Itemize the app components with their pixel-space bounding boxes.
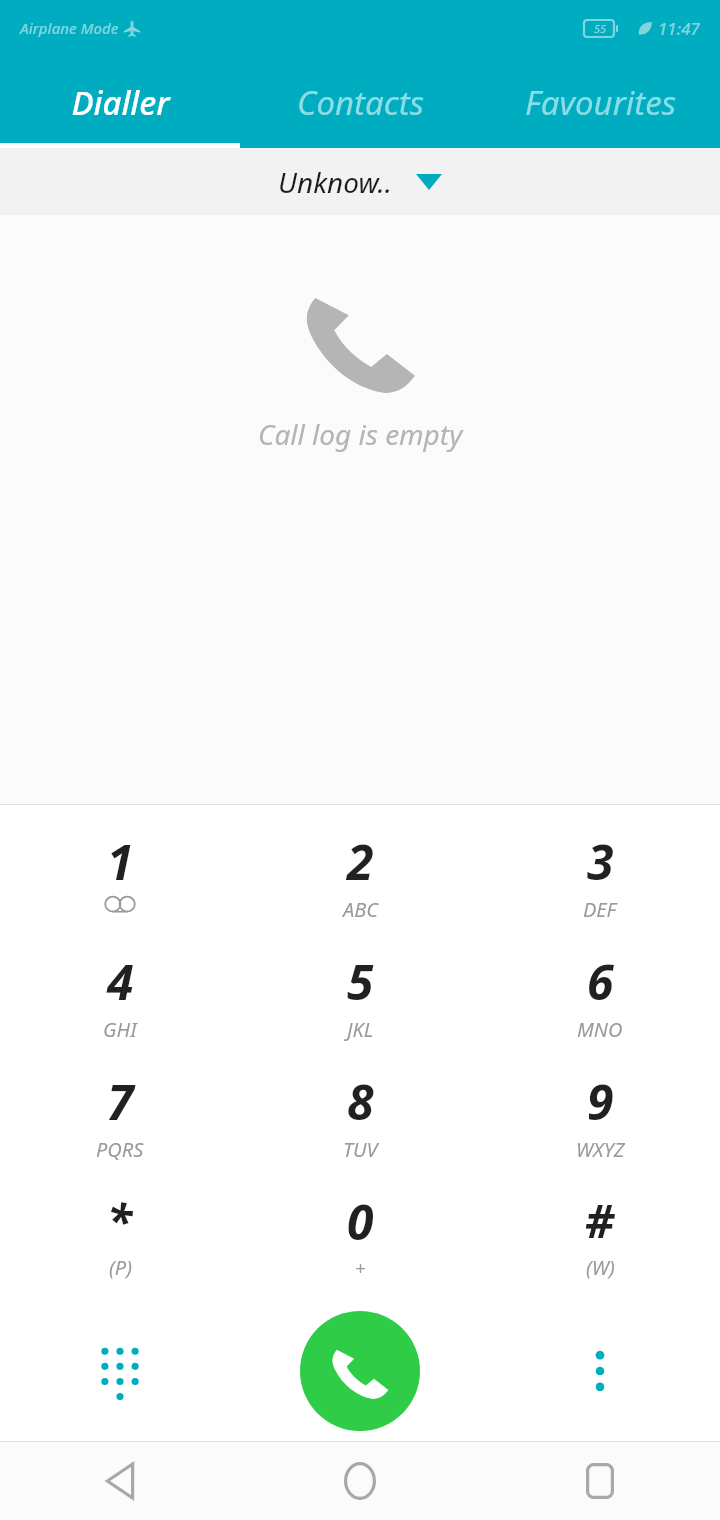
staticText: 4	[107, 949, 134, 1014]
button[interactable]: 8	[240, 1061, 480, 1181]
button[interactable]: 6	[480, 941, 720, 1061]
button[interactable]: Keypad	[0, 1301, 240, 1441]
button[interactable]: 1	[0, 821, 240, 941]
button[interactable]: More options	[480, 1301, 720, 1441]
staticText: *	[107, 1189, 133, 1252]
staticText: 1	[107, 829, 134, 894]
button[interactable]: #	[480, 1181, 720, 1301]
button[interactable]: 7	[0, 1061, 240, 1181]
staticText: (W)	[586, 1254, 615, 1281]
button[interactable]: 0	[240, 1181, 480, 1301]
staticText: 7	[107, 1069, 134, 1134]
staticText: TUV	[343, 1136, 378, 1163]
button[interactable]: Recent apps	[480, 1442, 720, 1520]
button[interactable]: Home	[240, 1442, 480, 1520]
staticText: 11:47	[658, 17, 700, 40]
staticText: (P)	[109, 1254, 132, 1281]
button[interactable]: 4	[0, 941, 240, 1061]
staticText: DEF	[583, 896, 617, 923]
button[interactable]: Favourites	[480, 56, 720, 148]
button[interactable]: Back	[0, 1442, 240, 1520]
staticText: Dialler	[71, 80, 170, 125]
button[interactable]: Contacts	[240, 56, 480, 148]
staticText: JKL	[347, 1016, 374, 1043]
staticText: 6	[587, 949, 614, 1014]
staticText: 0	[347, 1189, 374, 1254]
staticText: ABC	[343, 896, 378, 923]
button[interactable]: Call	[300, 1311, 420, 1431]
staticText: 9	[587, 1069, 614, 1134]
staticText: 2	[347, 829, 374, 894]
staticText: Unknow..	[278, 163, 392, 201]
staticText: 55	[594, 21, 607, 36]
button[interactable]: Unknow..	[0, 148, 720, 215]
button[interactable]: 9	[480, 1061, 720, 1181]
staticText: MNO	[577, 1016, 623, 1043]
staticText: Airplane Mode	[20, 18, 119, 38]
staticText: Contacts	[297, 80, 424, 125]
staticText: PQRS	[96, 1136, 144, 1163]
button[interactable]: Dialler	[0, 56, 240, 148]
staticText: WXYZ	[576, 1136, 625, 1163]
button[interactable]: 3	[480, 821, 720, 941]
staticText: 8	[347, 1069, 374, 1134]
button[interactable]: 5	[240, 941, 480, 1061]
staticText: GHI	[103, 1016, 137, 1043]
staticText: 3	[587, 829, 614, 894]
button[interactable]: *	[0, 1181, 240, 1301]
staticText: Favourites	[525, 80, 676, 125]
button[interactable]: 2	[240, 821, 480, 941]
staticText: 5	[347, 949, 374, 1014]
staticText: #	[585, 1189, 615, 1252]
staticText: Call log is empty	[258, 415, 463, 453]
staticText: +	[355, 1256, 366, 1281]
